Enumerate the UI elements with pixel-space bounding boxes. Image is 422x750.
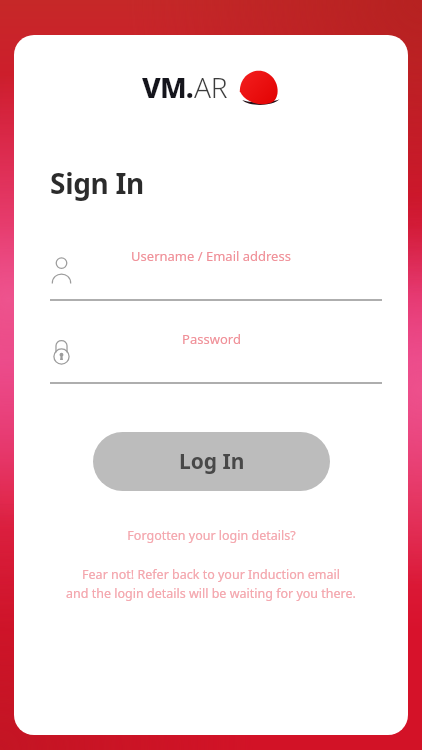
staticText: Log In (179, 447, 245, 476)
staticText: Sign In (50, 164, 144, 202)
staticText: Username / Email address (131, 247, 291, 265)
button[interactable]: Log In (93, 432, 330, 491)
staticText: VM. (142, 68, 194, 106)
staticText: AR (194, 68, 228, 106)
staticText: Fear not! Refer back to your Induction e… (34, 566, 388, 602)
button[interactable]: Forgotten your login details? (14, 527, 408, 544)
staticText: Forgotten your login details? (127, 527, 296, 544)
other: VM.AR logo (239, 69, 280, 106)
button[interactable]: Password (14, 322, 408, 400)
other: Username (50, 255, 73, 284)
staticText: Password (182, 330, 241, 348)
button[interactable]: Username / Email address (14, 239, 408, 317)
other: Password (50, 338, 73, 367)
